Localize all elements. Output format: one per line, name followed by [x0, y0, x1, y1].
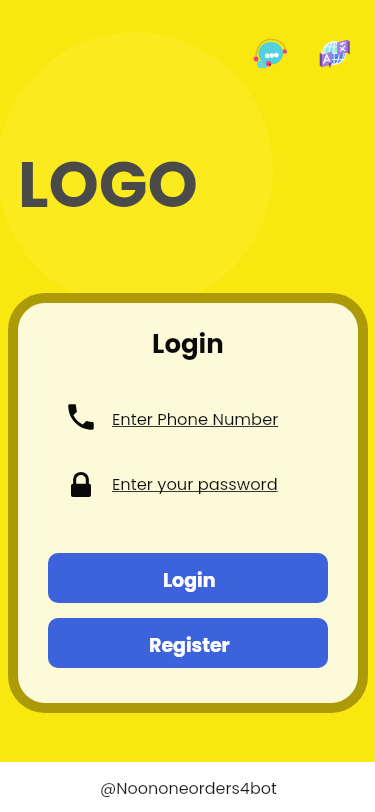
button[interactable]: Enter Phone Number [67, 401, 297, 435]
button[interactable]: Support [253, 36, 289, 72]
staticText: Login [163, 567, 216, 594]
button[interactable]: Register [48, 618, 328, 668]
button[interactable]: Enter your password [67, 466, 297, 500]
button[interactable]: Language [317, 35, 353, 71]
staticText: @Noononeorders4bot [100, 777, 277, 799]
staticText: Enter Phone Number [112, 408, 279, 431]
staticText: Login [152, 326, 224, 362]
staticText: Register [149, 632, 230, 659]
staticText: LOGO [18, 140, 198, 230]
button[interactable]: Login [48, 553, 328, 603]
staticText: Enter your password [112, 473, 278, 496]
